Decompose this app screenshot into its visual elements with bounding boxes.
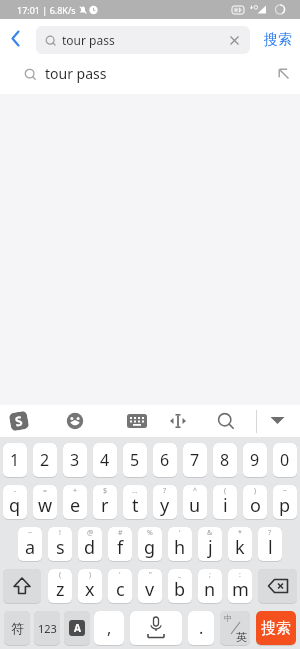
staticText: 中 [224,613,232,623]
button[interactable]: " [138,569,162,604]
button[interactable]: ( [213,485,237,520]
button[interactable] [127,413,147,429]
button[interactable]: … [123,485,147,520]
staticText: h [174,535,186,560]
button[interactable] [168,413,188,429]
button[interactable] [66,412,84,430]
button[interactable]: $ [93,485,117,520]
button[interactable]: 中 [220,611,250,646]
staticText: t [132,493,139,518]
button[interactable]: 9 [243,443,267,478]
staticText: x [85,577,95,602]
staticText: S [13,411,24,430]
button[interactable] [258,569,297,604]
staticText: 8 [220,449,230,471]
button[interactable]: ? [153,485,177,520]
button[interactable]: 2 [33,443,57,478]
button[interactable]: ' [108,569,132,604]
button[interactable]: - [3,485,27,520]
staticText: j [208,535,213,560]
staticText: ? [163,486,167,496]
staticText: 4 [100,449,110,471]
button[interactable]: + [63,485,87,520]
staticText: ' [179,528,181,538]
button[interactable]: , [94,611,124,646]
button[interactable] [130,611,182,646]
button[interactable] [2,24,32,54]
staticText: ~ [28,528,33,538]
button[interactable]: ^ [183,485,207,520]
staticText: ! [59,528,61,538]
staticText: y [160,493,170,518]
button[interactable]: * [228,527,252,562]
staticText: % [147,528,153,538]
staticText: z [56,577,65,602]
button[interactable]: 7 [183,443,207,478]
staticText: 6 [160,449,170,471]
button[interactable]: 符 [4,611,30,646]
staticText: d [84,535,96,560]
staticText: ' [119,570,121,580]
staticText: b [174,577,186,602]
button[interactable]: ~ [18,527,42,562]
button[interactable] [269,414,286,427]
button[interactable]: ) [243,485,267,520]
staticText: a [25,535,36,560]
staticText: 2 [40,449,50,471]
staticText: ( [224,486,227,496]
button[interactable]: & [198,527,222,562]
button[interactable]: 0 [273,443,297,478]
button[interactable]: = [33,485,57,520]
button[interactable]: . [188,611,214,646]
staticText: tour pass [62,32,115,48]
staticText: - [14,486,17,496]
button[interactable]: _ [168,569,192,604]
button[interactable]: ; [198,569,222,604]
staticText: q [9,493,21,518]
staticText: 符 [11,620,24,636]
staticText: 英 [236,630,247,644]
button[interactable]: 搜索 [255,26,300,54]
staticText: p [279,493,291,518]
staticText: … [132,486,138,496]
button[interactable]: A [64,611,90,646]
button[interactable]: 5 [123,443,147,478]
button[interactable]: @ [78,527,102,562]
staticText: 123 [38,621,57,636]
button[interactable]: # [108,527,132,562]
staticText: 5 [130,449,140,471]
staticText: ; [209,570,211,580]
staticText: ^ [193,486,198,496]
button[interactable]: 4 [93,443,117,478]
button[interactable]: tour pass [36,26,250,54]
button[interactable]: ( [48,569,72,604]
button[interactable]: 123 [34,611,60,646]
button[interactable] [217,412,234,429]
button[interactable]: % [138,527,162,562]
staticText: s [56,535,65,560]
staticText: 搜索 [264,31,292,49]
staticText: ( [59,570,62,580]
button[interactable]: 6 [153,443,177,478]
button[interactable]: 搜索 [256,611,296,646]
button[interactable]: ~ [273,485,297,520]
button[interactable]: 3 [63,443,87,478]
button[interactable]: S [7,409,31,433]
button[interactable]: ? [258,527,282,562]
staticText: @ [87,528,94,538]
staticText: l [268,535,273,560]
button[interactable] [3,569,41,604]
button[interactable]: 1 [3,443,27,478]
staticText: " [149,570,152,580]
button[interactable]: ' [168,527,192,562]
staticText: 1 [10,449,20,471]
staticText: ~ [283,486,288,496]
button[interactable]: tour pass [0,55,300,92]
staticText: A [74,621,81,635]
button[interactable]: : [228,569,252,604]
staticText: c [116,577,125,602]
button[interactable]: ) [78,569,102,604]
button[interactable]: ! [48,527,72,562]
staticText: 3 [70,449,80,471]
button[interactable]: 8 [213,443,237,478]
